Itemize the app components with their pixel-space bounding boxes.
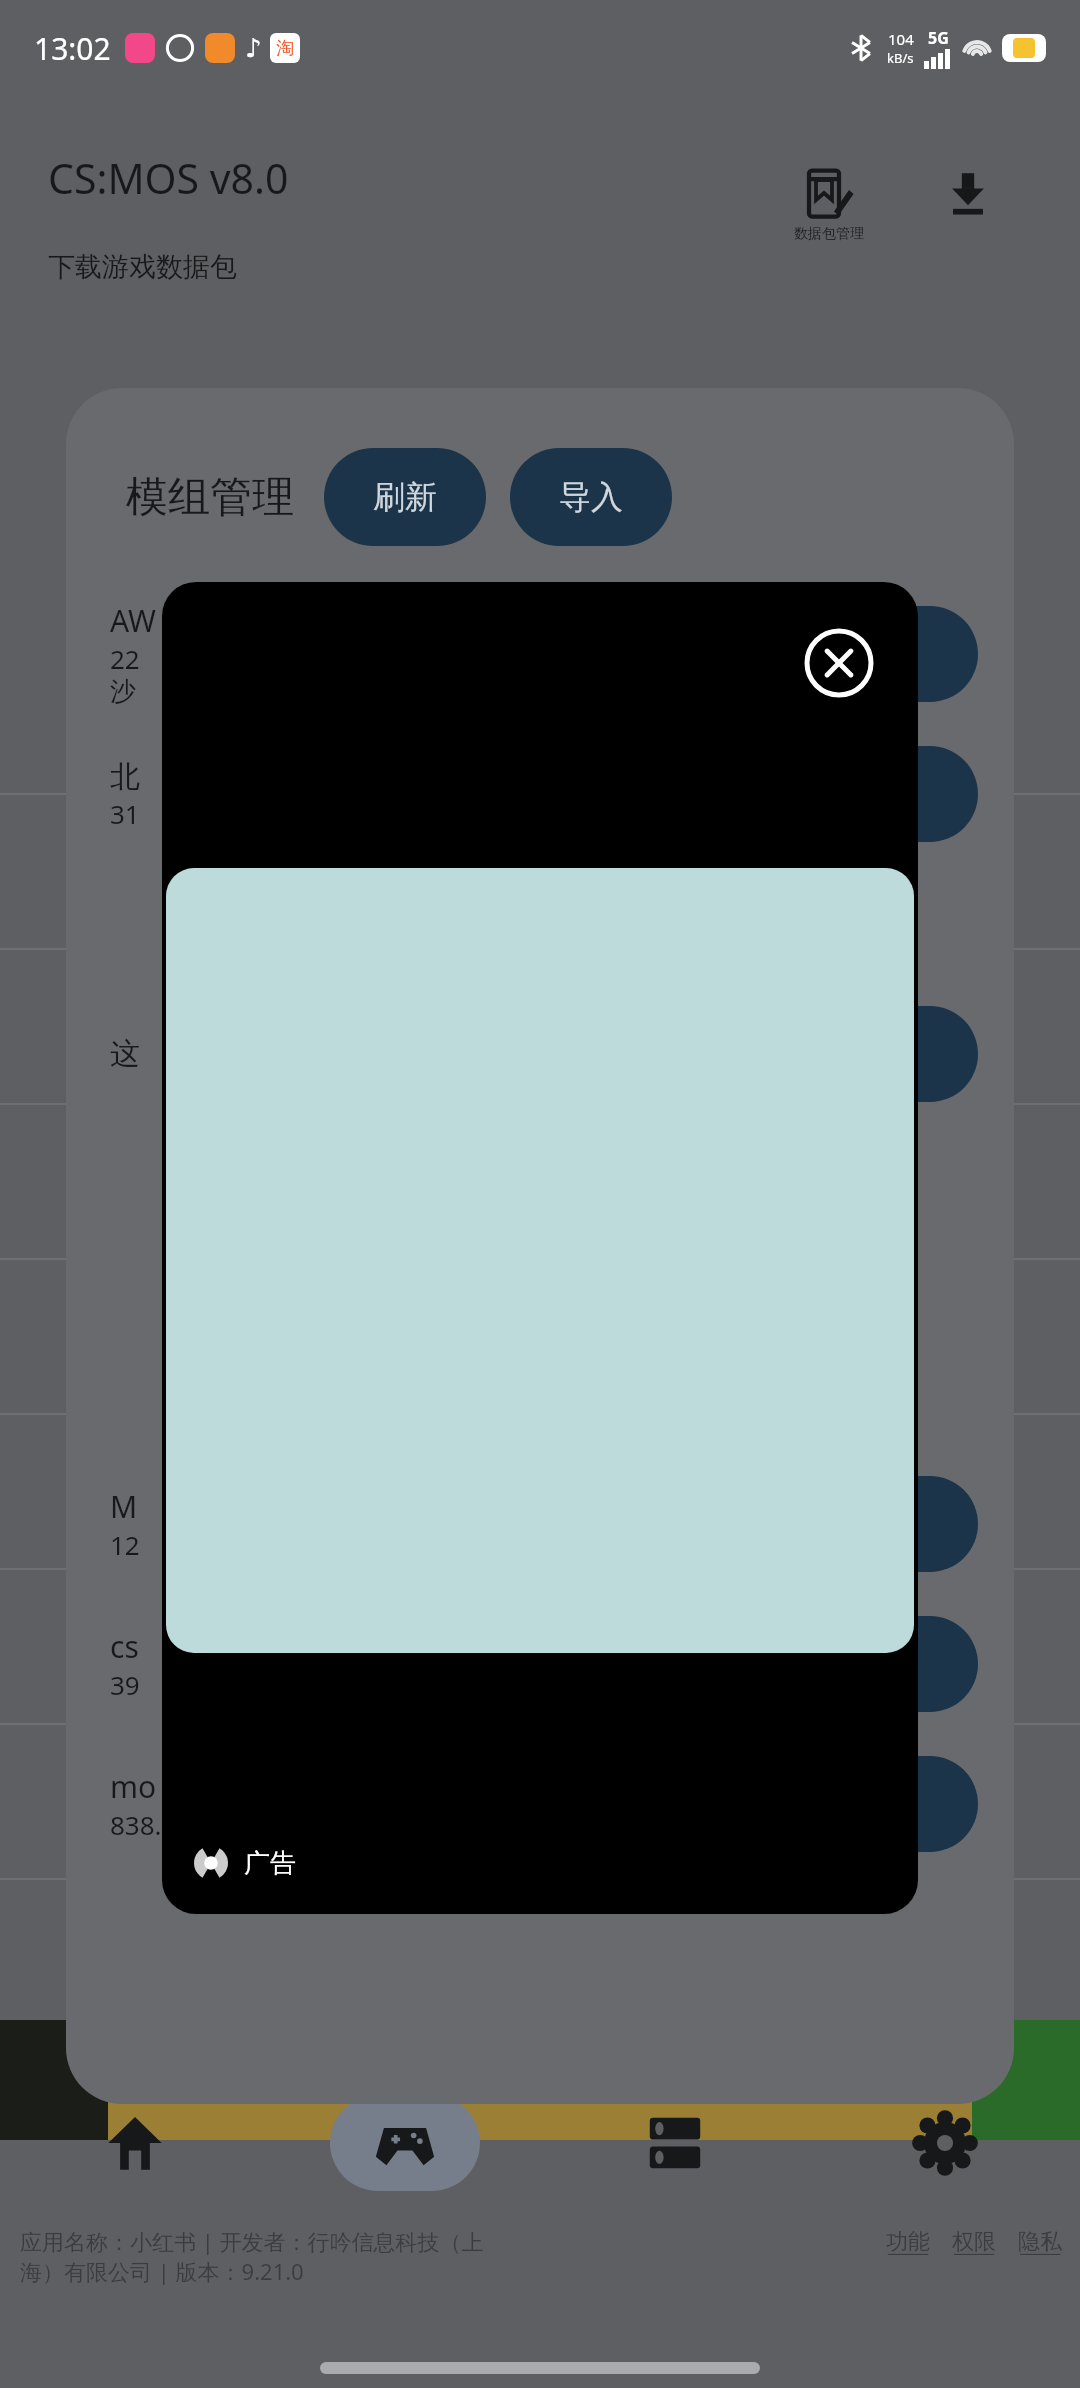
- staticText: 22: [110, 641, 140, 676]
- button[interactable]: 首页: [0, 2068, 270, 2218]
- staticText: kB/s: [887, 49, 914, 67]
- button[interactable]: mo: [66, 1734, 1014, 1874]
- button[interactable]: 关闭广告: [162, 582, 918, 1914]
- button[interactable]: 下载: [940, 165, 996, 221]
- staticText: ♪: [245, 33, 262, 63]
- button[interactable]: 隐私: [1018, 2228, 1062, 2256]
- button[interactable]: 北: [66, 724, 1014, 864]
- staticText: cs: [110, 1626, 139, 1667]
- staticText: 12: [110, 1527, 140, 1562]
- button[interactable]: 数据包管理: [790, 165, 868, 247]
- staticText: 刷新: [373, 477, 437, 517]
- staticText: 31: [110, 796, 140, 831]
- staticText: 104: [888, 29, 914, 49]
- button[interactable]: 服务器: [540, 2068, 810, 2218]
- button[interactable]: [808, 606, 978, 702]
- staticText: 广告: [244, 1847, 296, 1880]
- staticText: 模组管理: [126, 471, 294, 524]
- staticText: 导入: [559, 477, 623, 517]
- staticText: mo: [110, 1766, 157, 1807]
- button[interactable]: M: [66, 1454, 1014, 1594]
- staticText: M: [110, 1486, 138, 1527]
- staticText: 功能: [886, 2228, 930, 2256]
- button[interactable]: 这: [66, 984, 1014, 1124]
- staticText: 数据包管理: [794, 225, 864, 243]
- button[interactable]: 关闭广告: [800, 624, 878, 702]
- button[interactable]: cs: [66, 1594, 1014, 1734]
- staticText: 北: [110, 758, 140, 796]
- staticText: AW: [110, 600, 156, 641]
- button[interactable]: [808, 1756, 978, 1852]
- staticText: 这: [110, 1035, 140, 1073]
- staticText: 39: [110, 1667, 140, 1702]
- staticText: 权限: [952, 2228, 996, 2256]
- staticText: 淘: [276, 37, 294, 60]
- button[interactable]: 游戏: [270, 2068, 540, 2218]
- staticText: CS:MOS v8.0: [48, 150, 289, 206]
- staticText: 13:02: [34, 28, 111, 69]
- button[interactable]: 刷新: [324, 448, 486, 546]
- button[interactable]: [808, 1616, 978, 1712]
- staticText: 隐私: [1018, 2228, 1062, 2256]
- button[interactable]: [808, 746, 978, 842]
- staticText: 5G: [928, 27, 949, 49]
- staticText: 沙: [110, 676, 136, 709]
- staticText: 应用名称：小红书 | 开发者：行吟信息科技（上: [20, 2226, 484, 2256]
- button[interactable]: 导入: [510, 448, 672, 546]
- button[interactable]: 功能: [886, 2228, 930, 2256]
- button[interactable]: 设置: [810, 2068, 1080, 2218]
- staticText: 海）有限公司 | 版本：9.21.0: [20, 2256, 304, 2286]
- button[interactable]: AW: [66, 584, 1014, 724]
- button[interactable]: [808, 1006, 978, 1102]
- staticText: 838.42 KB: [110, 1807, 232, 1842]
- staticText: 下载游戏数据包: [48, 250, 237, 284]
- button[interactable]: [808, 1476, 978, 1572]
- button[interactable]: 权限: [952, 2228, 996, 2256]
